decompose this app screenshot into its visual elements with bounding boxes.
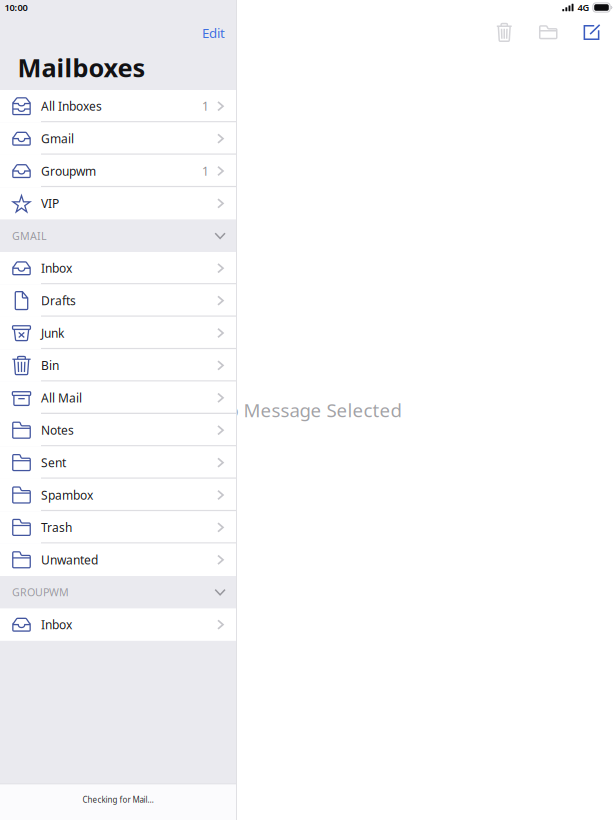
button[interactable]: Groupwm (0, 155, 236, 187)
button[interactable]: Sent (0, 446, 236, 479)
button[interactable]: Drafts (0, 284, 236, 317)
staticText: Checking for Mail… (82, 794, 153, 805)
button[interactable]: All Mail (0, 382, 236, 414)
button[interactable]: Junk (0, 317, 236, 349)
staticText: Junk (41, 325, 64, 341)
button[interactable]: Trash (0, 511, 236, 544)
staticText: Bin (41, 357, 59, 373)
staticText: 10:00 (4, 1, 27, 14)
staticText: Notes (41, 422, 74, 438)
button[interactable]: VIP (0, 187, 236, 220)
staticText: Mailboxes (17, 51, 145, 84)
staticText: Drafts (41, 293, 76, 308)
button[interactable]: Unwanted (0, 544, 236, 576)
button[interactable]: Bin (0, 349, 236, 382)
button[interactable]: Edit (191, 19, 236, 47)
button[interactable]: Notes (0, 414, 236, 446)
staticText: Gmail (41, 131, 74, 146)
button[interactable]: Move to folder (536, 17, 574, 48)
staticText: 1 (202, 98, 209, 114)
staticText: No Message Selected (213, 398, 401, 422)
staticText: Spambox (41, 487, 93, 503)
staticText: Groupwm (41, 163, 96, 179)
button[interactable]: Spambox (0, 479, 236, 511)
staticText: VIP (41, 195, 59, 211)
button[interactable]: All Inboxes (0, 90, 236, 122)
staticText: 4G (577, 1, 589, 14)
staticText: GROUPWM (12, 585, 69, 599)
button[interactable]: GROUPWM (0, 576, 236, 608)
button[interactable]: Inbox (0, 608, 236, 641)
staticText: Unwanted (41, 552, 98, 568)
button[interactable]: GMAIL (0, 220, 236, 252)
staticText: Trash (41, 519, 72, 535)
staticText: Inbox (41, 617, 72, 632)
button[interactable]: Gmail (0, 122, 236, 155)
staticText: Inbox (41, 260, 72, 276)
staticText: GMAIL (12, 229, 47, 243)
staticText: Edit (202, 24, 225, 42)
button[interactable]: Inbox (0, 252, 236, 284)
staticText: All Inboxes (41, 98, 102, 114)
staticText: All Mail (41, 390, 82, 406)
button[interactable]: Compose (574, 16, 611, 48)
staticText: Sent (41, 455, 66, 470)
button[interactable]: Delete (498, 15, 536, 49)
staticText: 1 (202, 163, 209, 179)
